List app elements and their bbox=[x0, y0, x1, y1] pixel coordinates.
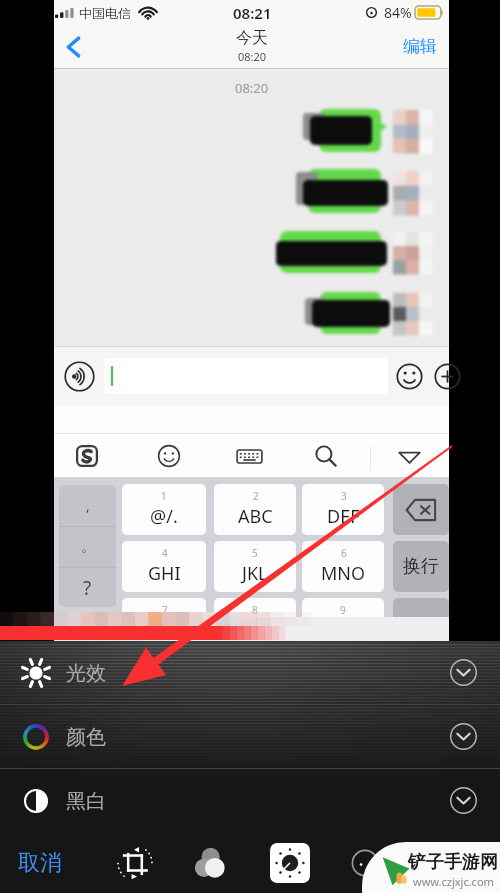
staticText: 8 bbox=[252, 603, 258, 617]
button[interactable]: 黑白 bbox=[0, 769, 500, 832]
button[interactable]: 换行 bbox=[393, 541, 449, 592]
button[interactable]: Sogou input bbox=[65, 434, 109, 478]
staticText: www.czjxjc.com bbox=[413, 874, 494, 889]
button[interactable]: ? bbox=[59, 567, 116, 607]
staticText: 颜色 bbox=[66, 725, 106, 750]
staticText: 08:20 bbox=[238, 49, 267, 64]
button[interactable]: Hide keyboard bbox=[387, 434, 431, 478]
button[interactable]: Adjust bbox=[266, 839, 314, 887]
staticText: 2 bbox=[253, 489, 259, 503]
staticText: 4 bbox=[162, 546, 168, 560]
button[interactable]: 3 bbox=[302, 484, 384, 535]
staticText: 今天 bbox=[236, 28, 268, 48]
button[interactable]: , bbox=[59, 485, 116, 526]
button[interactable] bbox=[393, 484, 449, 535]
button[interactable]: 6 bbox=[302, 541, 384, 592]
button[interactable]: 取消 bbox=[12, 841, 68, 885]
staticText: ? bbox=[83, 575, 92, 601]
staticText: GHI bbox=[148, 561, 181, 586]
staticText: 。 bbox=[81, 538, 95, 556]
button[interactable]: Emoji bbox=[395, 362, 424, 391]
button[interactable]: 8 bbox=[214, 598, 296, 617]
button[interactable]: 2 bbox=[214, 484, 296, 535]
staticText: 84% bbox=[384, 3, 412, 22]
button[interactable]: Markup bbox=[341, 839, 389, 887]
staticText: MNO bbox=[321, 561, 366, 586]
button[interactable]: Emoji keyboard bbox=[147, 434, 191, 478]
button[interactable]: 1 bbox=[122, 484, 206, 535]
button[interactable] bbox=[104, 358, 388, 394]
button[interactable]: 光效 bbox=[0, 641, 500, 704]
staticText: 光效 bbox=[66, 661, 106, 686]
staticText: 1 bbox=[161, 489, 167, 503]
staticText: 换行 bbox=[403, 555, 439, 578]
button[interactable]: Search bbox=[304, 434, 348, 478]
button[interactable]: 。 bbox=[59, 526, 116, 567]
button[interactable]: Back bbox=[61, 34, 87, 60]
button[interactable]: 9 bbox=[302, 598, 384, 617]
staticText: 3 bbox=[341, 489, 347, 503]
staticText: 9 bbox=[340, 603, 346, 617]
staticText: 08:20 bbox=[235, 79, 269, 97]
staticText: , bbox=[86, 496, 90, 515]
staticText: 铲子手游网 bbox=[408, 851, 498, 874]
staticText: 黑白 bbox=[66, 789, 106, 814]
button[interactable]: 7 bbox=[122, 598, 206, 617]
button[interactable]: Crop bbox=[111, 839, 159, 887]
staticText: 5 bbox=[252, 546, 258, 560]
button[interactable]: Filters bbox=[186, 839, 234, 887]
button[interactable]: 颜色 bbox=[0, 705, 500, 768]
staticText: @/. bbox=[150, 504, 178, 529]
staticText: 编辑 bbox=[403, 36, 437, 57]
staticText: ABC bbox=[238, 504, 273, 529]
staticText: 08:21 bbox=[233, 3, 272, 23]
staticText: 中国电信 bbox=[79, 5, 131, 21]
staticText: DEF bbox=[327, 504, 360, 529]
button[interactable]: Voice input bbox=[64, 361, 95, 392]
button[interactable]: 编辑 bbox=[399, 32, 441, 61]
staticText: JKL bbox=[242, 561, 268, 586]
staticText: 7 bbox=[162, 603, 168, 617]
button[interactable]: 5 bbox=[214, 541, 296, 592]
button[interactable]: Keyboard bbox=[227, 434, 271, 478]
staticText: 取消 bbox=[18, 849, 62, 877]
button[interactable]: More bbox=[433, 362, 462, 391]
button[interactable]: 4 bbox=[122, 541, 206, 592]
staticText: 6 bbox=[341, 546, 347, 560]
